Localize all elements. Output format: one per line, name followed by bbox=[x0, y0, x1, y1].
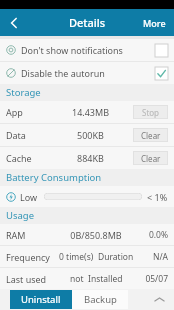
staticText: Low bbox=[20, 191, 38, 203]
staticText: Last used bbox=[6, 273, 52, 285]
staticText: not bbox=[70, 273, 84, 285]
staticText: Clear bbox=[141, 153, 161, 164]
staticText: Clear bbox=[141, 130, 161, 141]
staticText: Storage bbox=[6, 86, 41, 99]
button[interactable]: Don't show notifications bbox=[0, 39, 174, 61]
button[interactable]: Disable the autorun bbox=[0, 62, 174, 84]
staticText: 0B/850.8MB bbox=[52, 229, 140, 241]
button[interactable]: Clear bbox=[133, 151, 168, 165]
staticText: Usage bbox=[6, 209, 35, 222]
button[interactable]: Back bbox=[0, 9, 28, 36]
staticText: Disable the autorun bbox=[21, 67, 155, 79]
staticText: Cache bbox=[6, 152, 48, 164]
button[interactable]: Expand bbox=[144, 289, 174, 310]
staticText: 14.43MB bbox=[48, 106, 133, 118]
staticText: 05/07 bbox=[140, 273, 168, 285]
staticText: 0.0% bbox=[140, 229, 168, 241]
staticText: Details bbox=[69, 15, 106, 30]
staticText: Stop bbox=[142, 107, 160, 118]
staticText: Duration bbox=[98, 251, 134, 263]
button[interactable]: Checked bbox=[155, 67, 168, 80]
button[interactable]: Low bbox=[0, 186, 174, 207]
button[interactable]: Stop bbox=[133, 105, 168, 119]
staticText: 500KB bbox=[48, 129, 133, 141]
staticText: RAM bbox=[6, 229, 52, 241]
staticText: Backup bbox=[84, 293, 117, 306]
staticText: N/A bbox=[140, 251, 168, 263]
button[interactable]: Uninstall bbox=[10, 290, 72, 309]
staticText: App bbox=[6, 106, 48, 118]
staticText: 884KB bbox=[48, 152, 133, 164]
button[interactable]: Clear bbox=[133, 128, 168, 142]
staticText: More bbox=[143, 17, 166, 29]
button[interactable]: Backup bbox=[72, 290, 128, 309]
staticText: Uninstall bbox=[21, 293, 61, 306]
staticText: < 1% bbox=[147, 191, 168, 203]
staticText: Installed bbox=[88, 273, 123, 285]
staticText: Don't show notifications bbox=[21, 44, 155, 56]
button[interactable]: More bbox=[135, 9, 174, 36]
button[interactable]: Unchecked bbox=[155, 44, 168, 57]
staticText: Battery Consumption bbox=[6, 171, 102, 184]
staticText: Frequency bbox=[6, 251, 52, 263]
staticText: 0 time(s) bbox=[59, 251, 94, 263]
staticText: Data bbox=[6, 129, 48, 141]
